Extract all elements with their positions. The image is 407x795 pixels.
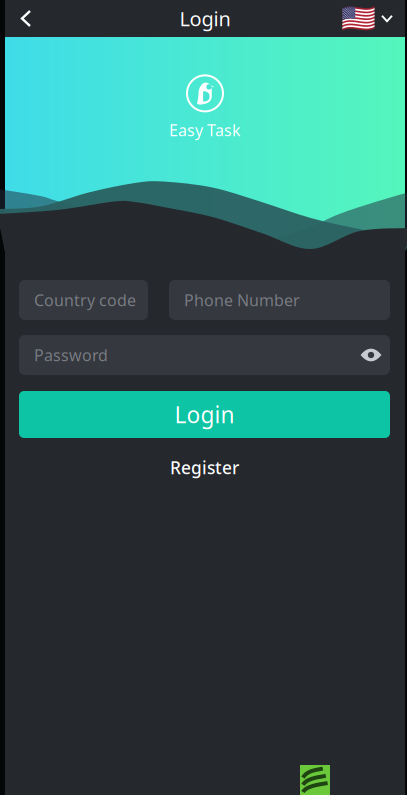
- staticText: Login: [174, 399, 234, 429]
- staticText: Login: [179, 5, 230, 32]
- staticText: 🇺🇸: [341, 2, 376, 34]
- button[interactable]: Select language: [329, 0, 405, 37]
- button[interactable]: Register: [163, 449, 246, 486]
- staticText: Password: [34, 344, 108, 366]
- button[interactable]: Back: [5, 0, 44, 37]
- staticText: Register: [170, 456, 239, 479]
- staticText: Phone Number: [184, 289, 300, 311]
- staticText: Country code: [34, 289, 136, 311]
- staticText: Easy Task: [169, 119, 241, 141]
- button[interactable]: Login: [19, 391, 390, 438]
- button[interactable]: Show password: [347, 335, 390, 375]
